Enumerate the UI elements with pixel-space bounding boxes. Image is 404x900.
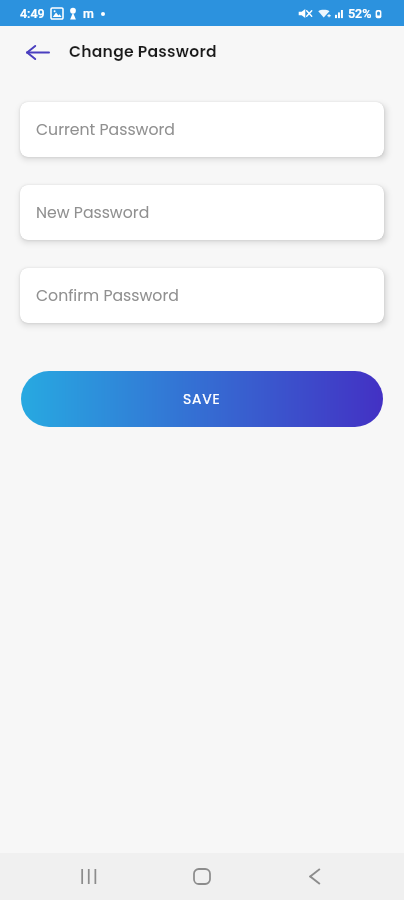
button[interactable]: Home [171,853,233,900]
staticText: Current Password [36,119,175,141]
button[interactable]: Confirm Password [20,268,384,323]
button[interactable]: Back [283,853,345,900]
staticText: 4:49 [20,6,45,21]
button[interactable]: Back [14,29,60,75]
button[interactable]: New Password [20,185,384,240]
staticText: SAVE [183,389,221,409]
staticText: Change Password [69,41,217,63]
button[interactable]: SAVE [21,371,383,427]
staticText: 52% [348,6,372,21]
staticText: New Password [36,202,150,224]
button[interactable]: Current Password [20,102,384,157]
staticText: Confirm Password [36,285,179,307]
button[interactable]: Recent apps [57,853,119,900]
staticText: m [83,6,94,21]
